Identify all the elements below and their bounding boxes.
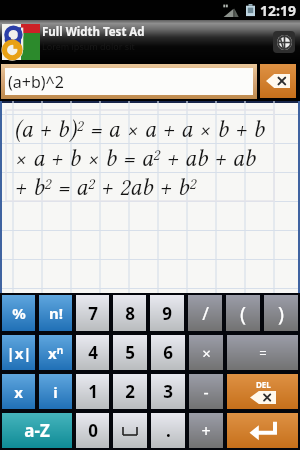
button[interactable]: 2 xyxy=(113,374,147,409)
staticText: - xyxy=(203,381,209,403)
staticText: × a + b × b = a2 + ab + ab xyxy=(14,145,256,172)
staticText: / xyxy=(202,301,209,326)
button[interactable]: Ad information xyxy=(273,31,295,53)
staticText: 4 xyxy=(88,341,98,364)
button[interactable]: Space xyxy=(113,413,147,448)
staticText: 12:19 xyxy=(260,1,296,20)
button[interactable]: 4 xyxy=(76,335,109,370)
staticText: i xyxy=(53,382,58,402)
staticText: (a+b)^2 xyxy=(8,71,64,93)
staticText: 1 xyxy=(88,380,98,403)
button[interactable]: x xyxy=(2,374,35,409)
button[interactable]: xn xyxy=(39,335,72,370)
button[interactable]: = xyxy=(227,335,298,370)
button[interactable]: Full Width Test Ad xyxy=(0,20,300,63)
button[interactable]: 3 xyxy=(151,374,185,409)
button[interactable]: |x| xyxy=(2,335,35,370)
button[interactable]: 6 xyxy=(151,335,185,370)
button[interactable]: 5 xyxy=(113,335,147,370)
button[interactable]: . xyxy=(151,413,185,448)
button[interactable]: i xyxy=(39,374,72,409)
staticText: × xyxy=(202,343,211,363)
button[interactable]: 0 xyxy=(76,413,109,448)
staticText: a-Z xyxy=(24,419,50,442)
staticText: Lorem ipsum dolor sit xyxy=(42,40,135,52)
staticText: 7 xyxy=(88,302,98,325)
button[interactable]: 8 xyxy=(113,295,146,331)
staticText: 0 xyxy=(88,419,98,442)
button[interactable]: ) xyxy=(264,295,298,331)
staticText: Full Width Test Ad xyxy=(42,24,145,40)
button[interactable]: 7 xyxy=(76,295,109,331)
button[interactable]: a-Z xyxy=(2,413,72,448)
staticText: |x| xyxy=(6,343,32,363)
button[interactable]: n! xyxy=(39,295,72,331)
staticText: DEL xyxy=(256,379,271,390)
button[interactable]: + xyxy=(189,413,223,448)
staticText: xn xyxy=(48,343,64,363)
staticText: + xyxy=(201,420,211,442)
button[interactable]: - xyxy=(189,374,223,409)
button[interactable]: Delete xyxy=(227,374,298,409)
staticText: = xyxy=(259,344,267,362)
staticText: 5 xyxy=(125,341,135,364)
staticText: ( xyxy=(240,300,246,327)
button[interactable]: × xyxy=(189,335,223,370)
staticText: n! xyxy=(49,303,63,323)
staticText: 9 xyxy=(162,302,172,325)
button[interactable]: 1 xyxy=(76,374,109,409)
staticText: % xyxy=(12,303,26,323)
staticText: + b2 = a2 + 2ab + b2 xyxy=(14,174,197,201)
staticText: 3 xyxy=(163,380,173,403)
staticText: ) xyxy=(278,300,284,327)
staticText: (a + b)2 = a × a + a × b + b xyxy=(14,116,265,143)
staticText: 6 xyxy=(163,341,173,364)
staticText: 8 xyxy=(125,302,135,325)
button[interactable]: / xyxy=(188,295,222,331)
staticText: 2 xyxy=(125,380,135,403)
button[interactable]: % xyxy=(2,295,35,331)
button[interactable]: (a+b)^2 xyxy=(5,68,253,95)
button[interactable]: ( xyxy=(226,295,260,331)
staticText: . xyxy=(166,419,171,442)
button[interactable]: Backspace xyxy=(260,64,296,98)
staticText: x xyxy=(14,382,23,402)
button[interactable]: 9 xyxy=(150,295,184,331)
button[interactable]: Enter xyxy=(227,413,298,448)
